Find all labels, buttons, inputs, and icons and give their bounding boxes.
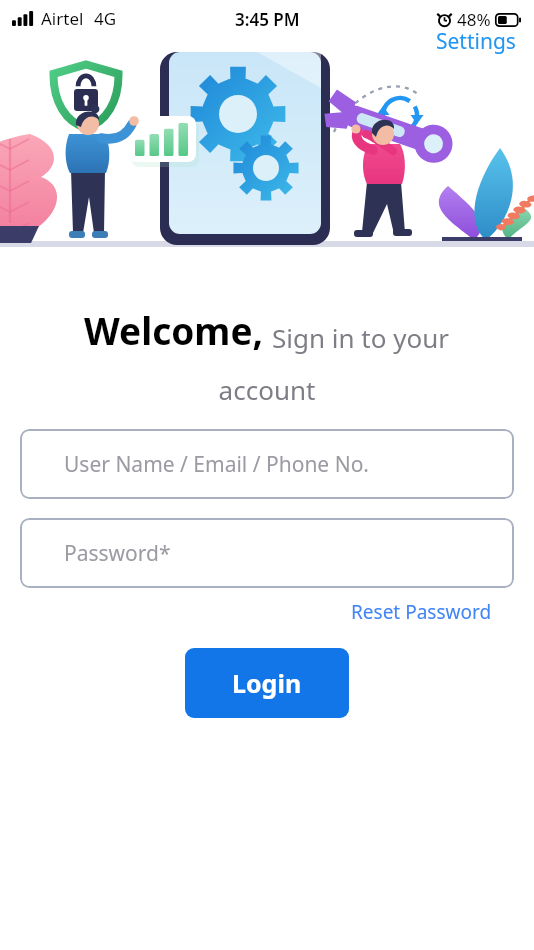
- staticText: 48%: [457, 8, 491, 31]
- staticText: Airtel: [41, 7, 84, 30]
- staticText: Settings: [436, 27, 516, 56]
- staticText: User Name / Email / Phone No.: [64, 450, 369, 479]
- button[interactable]: Password*: [20, 518, 514, 588]
- button[interactable]: User Name / Email / Phone No.: [20, 429, 514, 499]
- staticText: Sign in to your: [272, 320, 450, 355]
- staticText: Reset Password: [351, 599, 492, 625]
- button[interactable]: Settings: [432, 27, 520, 56]
- staticText: 4G: [94, 7, 117, 30]
- staticText: 3:45 PM: [235, 8, 300, 31]
- staticText: Password*: [64, 539, 171, 568]
- button[interactable]: Login: [185, 648, 349, 718]
- button[interactable]: Reset Password: [347, 596, 496, 628]
- staticText: account: [0, 372, 534, 407]
- staticText: Welcome,: [84, 305, 264, 355]
- staticText: Login: [232, 666, 302, 700]
